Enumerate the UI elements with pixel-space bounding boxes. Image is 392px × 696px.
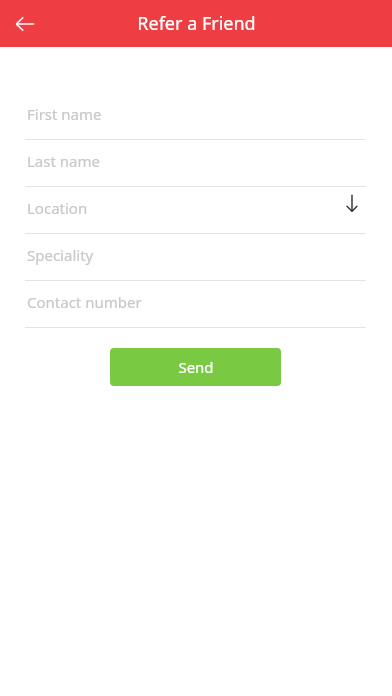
- staticText: Location: [27, 198, 88, 218]
- other: Select location: [343, 194, 361, 212]
- button[interactable]: Back: [12, 11, 38, 37]
- staticText: Contact number: [27, 292, 142, 312]
- button[interactable]: Send: [110, 348, 281, 386]
- button[interactable]: Contact number: [25, 281, 366, 328]
- staticText: Speciality: [27, 245, 94, 265]
- button[interactable]: Location: [25, 187, 366, 234]
- button[interactable]: First name: [25, 93, 366, 140]
- button[interactable]: Last name: [25, 140, 366, 187]
- staticText: First name: [27, 104, 102, 124]
- staticText: Send: [178, 357, 214, 377]
- button[interactable]: Speciality: [25, 234, 366, 281]
- staticText: Last name: [27, 151, 100, 171]
- staticText: Refer a Friend: [137, 11, 256, 36]
